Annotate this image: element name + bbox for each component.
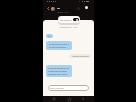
button[interactable]: Ecrire un message bbox=[48, 85, 89, 91]
button[interactable]: Agresse comment? bbox=[69, 54, 91, 58]
staticText: Lia bbox=[57, 7, 60, 10]
staticText: Ecrire un message bbox=[50, 87, 64, 89]
staticText: Ok bbox=[48, 35, 51, 38]
button[interactable]: Home bbox=[66, 96, 72, 102]
button[interactable]: quand tu vais arriver a les auts faf opp… bbox=[46, 41, 72, 50]
button[interactable]: Profile photo bbox=[51, 7, 55, 11]
button[interactable]: Chat à durée lim bbox=[58, 16, 80, 23]
button[interactable]: Recent apps bbox=[51, 96, 57, 102]
button[interactable]: Ok bbox=[46, 34, 53, 38]
staticText: Chat à durée lim bbox=[60, 19, 72, 21]
button[interactable]: Call bbox=[76, 6, 81, 11]
staticText: Aujourd'hui à 14:32 bbox=[43, 26, 94, 29]
staticText: Agresse comment? bbox=[72, 55, 89, 58]
staticText: essaye de demande mo rouiller de puis po… bbox=[48, 67, 70, 76]
staticText: quand tu vais arriver a les auts faf opp… bbox=[49, 43, 69, 49]
button[interactable]: Video call bbox=[84, 5, 89, 10]
button[interactable]: Back bbox=[80, 96, 86, 102]
button[interactable]: essaye de demande mo rouiller de puis po… bbox=[46, 65, 72, 77]
staticText: en ligne · 14:02 bbox=[57, 11, 69, 13]
button[interactable]: Back bbox=[46, 6, 51, 11]
